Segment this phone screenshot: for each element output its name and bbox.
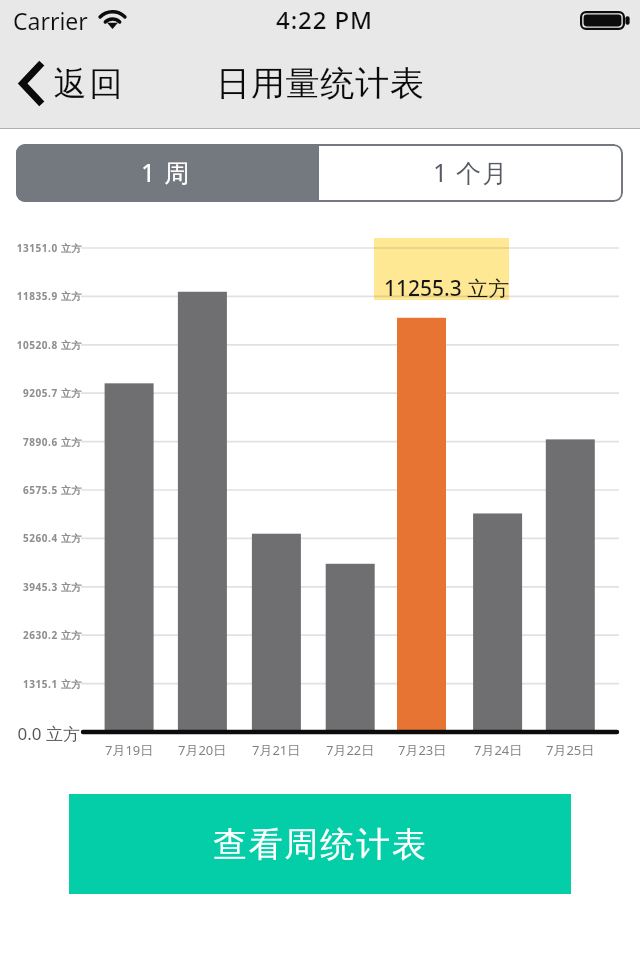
staticText: 1 周 <box>141 155 191 189</box>
other: 返回 <box>19 62 43 105</box>
staticText: 9205.7 立方 <box>23 386 82 400</box>
staticText: 5260.4 立方 <box>23 531 82 545</box>
staticText: 日用量统计表 <box>216 62 425 105</box>
staticText: 7月21日 <box>252 741 301 759</box>
staticText: 11255.3 立方 <box>384 274 510 303</box>
staticText: 1 个月 <box>433 155 509 189</box>
staticText: 6575.5 立方 <box>23 483 82 497</box>
button[interactable]: 7月19日 <box>105 248 154 760</box>
staticText: 返回 <box>52 63 124 105</box>
staticText: 7月20日 <box>178 741 227 759</box>
button[interactable]: 返回 <box>12 57 138 110</box>
other: Battery <box>580 11 630 30</box>
button[interactable]: 1 个月 <box>319 144 623 202</box>
staticText: 3945.3 立方 <box>23 580 82 594</box>
staticText: 查看周统计表 <box>213 823 428 866</box>
staticText: 7月24日 <box>474 741 523 759</box>
staticText: 7月22日 <box>326 741 375 759</box>
staticText: 11835.9 立方 <box>16 289 82 303</box>
staticText: 2630.2 立方 <box>23 628 82 642</box>
staticText: 13151.0 立方 <box>16 241 82 255</box>
button[interactable]: 7月25日 <box>546 248 595 760</box>
staticText: 1315.1 立方 <box>23 677 82 691</box>
staticText: 4:22 PM <box>276 3 373 36</box>
button[interactable]: 7月21日 <box>252 248 301 760</box>
button[interactable]: 查看周统计表 <box>69 794 571 894</box>
staticText: 7月25日 <box>546 741 595 759</box>
button[interactable]: 7月24日 <box>473 248 522 760</box>
staticText: Carrier <box>13 5 88 36</box>
other: Wi-Fi <box>101 10 124 29</box>
staticText: 7890.6 立方 <box>23 435 82 449</box>
button[interactable]: 7月20日 <box>178 248 227 760</box>
staticText: 7月23日 <box>398 741 447 759</box>
button[interactable]: 7月22日 <box>326 248 375 760</box>
staticText: 10520.8 立方 <box>16 338 82 352</box>
button[interactable]: 1 周 <box>16 144 319 202</box>
staticText: 0.0 立方 <box>17 722 80 745</box>
staticText: 7月19日 <box>105 741 154 759</box>
button[interactable]: 7月23日 <box>397 248 446 760</box>
